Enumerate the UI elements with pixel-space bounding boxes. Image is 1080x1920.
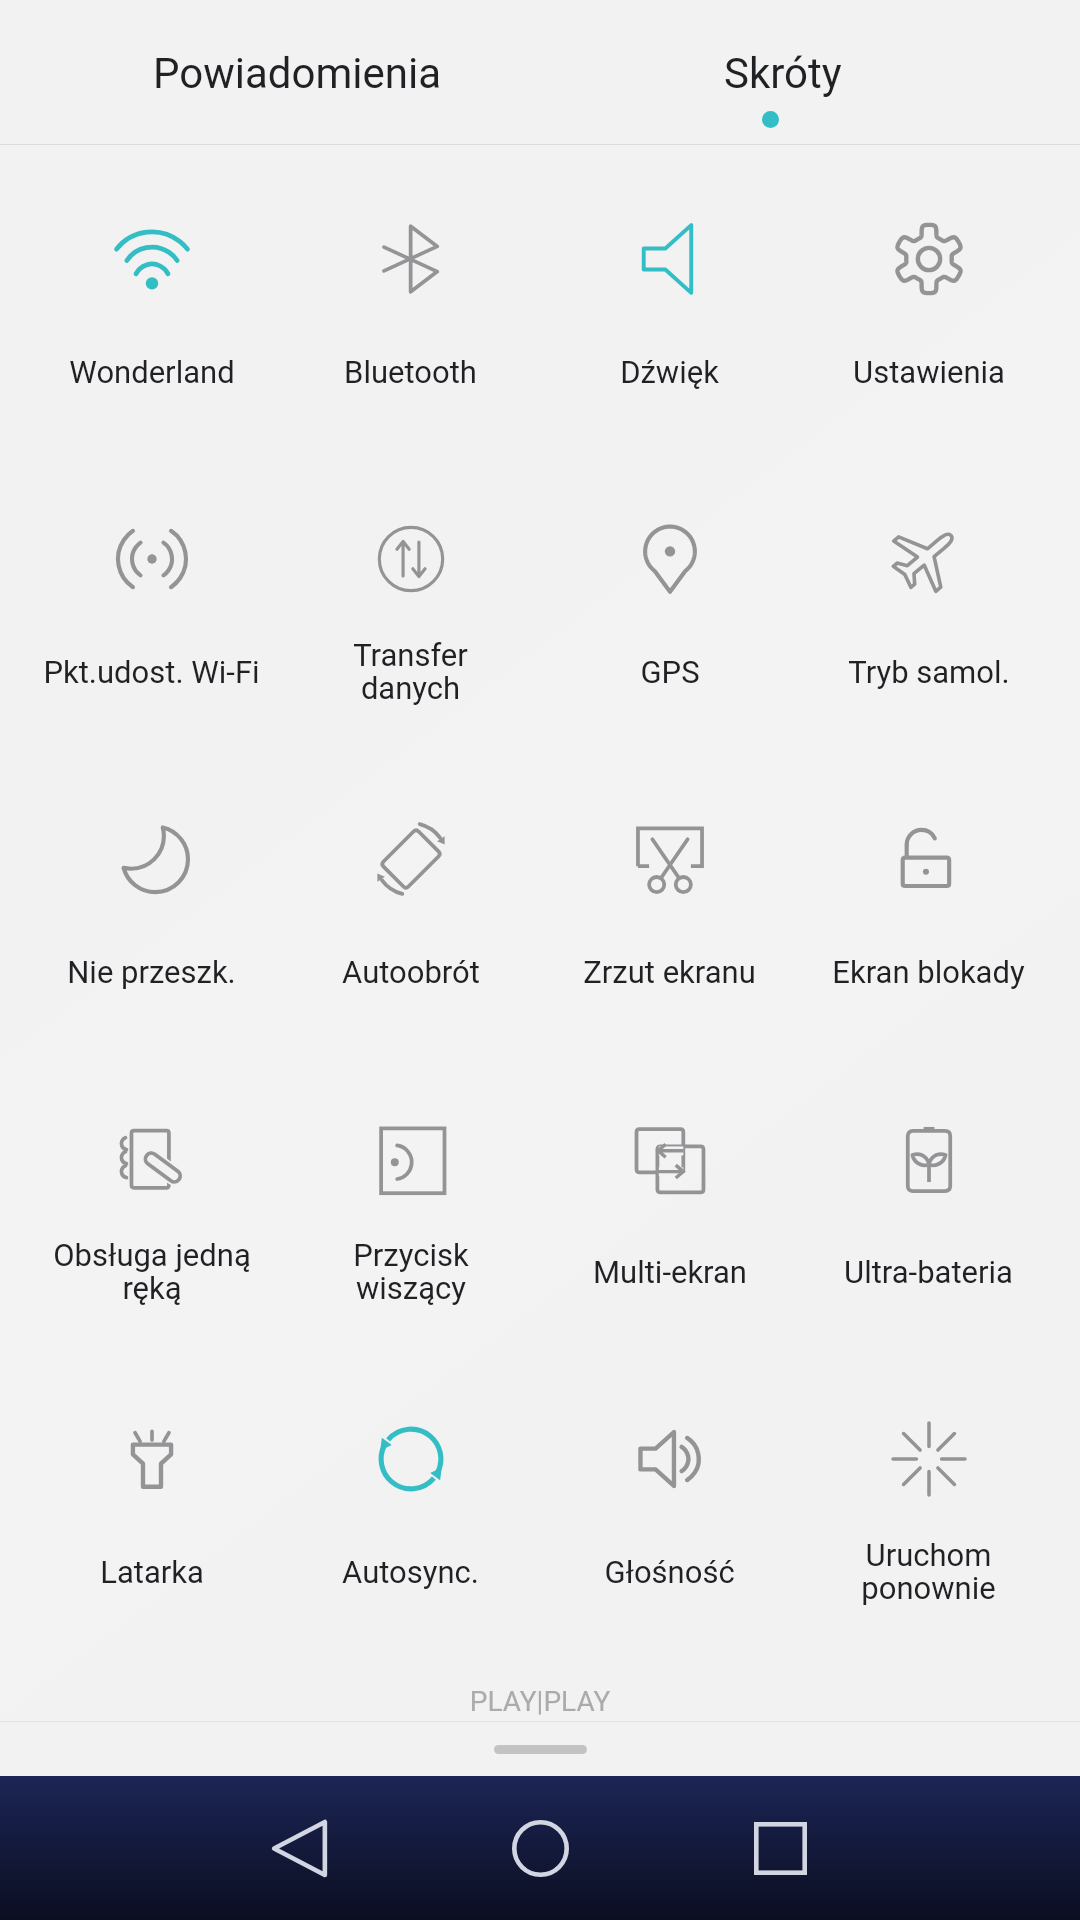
staticText: Dźwięk [620, 354, 719, 390]
staticText: Zrzut ekranu [583, 954, 756, 990]
button[interactable]: Pkt.udost. Wi-Fi [22, 445, 281, 745]
button[interactable]: Back [239, 1788, 359, 1908]
button[interactable]: Nie przeszk. [22, 745, 281, 1045]
staticText: Uruchom ponownie [861, 1537, 996, 1607]
staticText: Autosync. [342, 1554, 479, 1590]
button[interactable]: Wonderland [22, 145, 281, 445]
button[interactable]: Uruchom ponownie [799, 1345, 1058, 1645]
staticText: Nie przeszk. [67, 954, 236, 990]
staticText: Tryb samol. [848, 654, 1010, 690]
button[interactable]: Powiadomienia [55, 0, 540, 145]
staticText: Głośność [604, 1554, 735, 1590]
button[interactable]: Transfer danych [281, 445, 540, 745]
staticText: Bluetooth [344, 354, 477, 390]
staticText: Powiadomienia [153, 49, 442, 98]
button[interactable]: Tryb samol. [799, 445, 1058, 745]
button[interactable]: Latarka [22, 1345, 281, 1645]
staticText: Pkt.udost. Wi-Fi [43, 654, 260, 690]
button[interactable]: Skróty [540, 0, 1025, 145]
staticText: Latarka [100, 1554, 204, 1590]
button[interactable]: Dźwięk [540, 145, 799, 445]
button[interactable]: Głośność [540, 1345, 799, 1645]
staticText: Przycisk wiszący [353, 1237, 469, 1307]
button[interactable]: Autosync. [281, 1345, 540, 1645]
button[interactable]: Ustawienia [799, 145, 1058, 445]
staticText: Wonderland [69, 354, 235, 390]
staticText: Ekran blokady [832, 954, 1025, 990]
staticText: Ultra-bateria [844, 1254, 1013, 1290]
button[interactable]: Home [480, 1788, 600, 1908]
staticText: Multi-ekran [593, 1254, 747, 1290]
staticText: GPS [640, 654, 700, 690]
button[interactable]: Obsługa jedną ręką [22, 1045, 281, 1345]
button[interactable]: Ultra-bateria [799, 1045, 1058, 1345]
staticText: Transfer danych [353, 637, 468, 707]
staticText: Ustawienia [853, 354, 1005, 390]
button[interactable]: Recent apps [720, 1788, 840, 1908]
staticText: PLAY|PLAY [0, 1685, 1080, 1718]
staticText: Autoobrót [342, 954, 480, 990]
button[interactable]: GPS [540, 445, 799, 745]
button[interactable]: Autoobrót [281, 745, 540, 1045]
button[interactable]: Multi-ekran [540, 1045, 799, 1345]
staticText: Obsługa jedną ręką [53, 1237, 251, 1307]
button[interactable]: Ekran blokady [799, 745, 1058, 1045]
staticText: Skróty [724, 49, 842, 98]
button[interactable]: Zrzut ekranu [540, 745, 799, 1045]
button[interactable]: Przycisk wiszący [281, 1045, 540, 1345]
button[interactable]: Bluetooth [281, 145, 540, 445]
